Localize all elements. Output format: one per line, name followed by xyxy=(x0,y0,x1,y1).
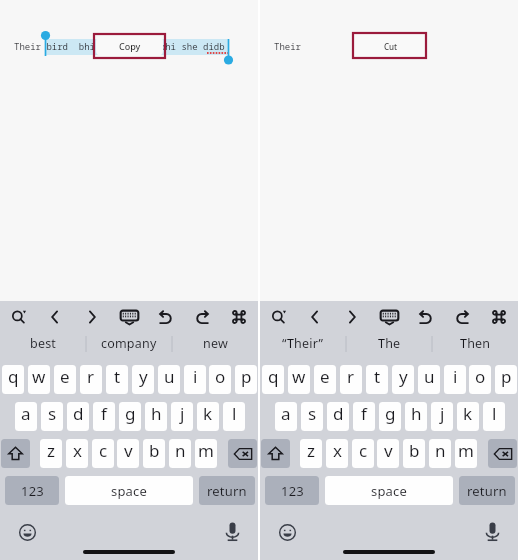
button[interactable]: x xyxy=(66,439,88,468)
button[interactable]: v xyxy=(377,439,399,468)
button[interactable]: h xyxy=(145,402,167,431)
staticText: Their xyxy=(274,40,302,52)
button[interactable]: s xyxy=(41,402,63,431)
button[interactable]: o xyxy=(469,365,491,394)
button[interactable]: r xyxy=(340,365,362,394)
button[interactable]: w xyxy=(288,365,310,394)
button[interactable]: c xyxy=(92,439,114,468)
button[interactable]: n xyxy=(169,439,191,468)
button[interactable]: x xyxy=(326,439,348,468)
button[interactable]: r xyxy=(80,365,102,394)
button[interactable]: company xyxy=(86,332,172,355)
button[interactable]: Search xyxy=(261,304,297,330)
button[interactable]: o xyxy=(209,365,231,394)
button[interactable]: z xyxy=(300,439,322,468)
button[interactable]: Then xyxy=(432,332,518,355)
button[interactable]: Dictation xyxy=(226,522,239,541)
button[interactable]: Emoji xyxy=(18,523,36,541)
button[interactable]: Redo xyxy=(184,304,220,330)
button[interactable]: u xyxy=(158,365,180,394)
button[interactable]: i xyxy=(184,365,206,394)
button[interactable]: q xyxy=(2,365,24,394)
button[interactable]: best xyxy=(0,332,86,355)
staticText: o xyxy=(215,365,226,388)
button[interactable]: return xyxy=(199,476,255,505)
staticText: n xyxy=(435,439,446,462)
button[interactable]: d xyxy=(327,402,349,431)
button[interactable]: Redo xyxy=(444,304,480,330)
button[interactable]: Copy xyxy=(96,36,163,56)
button[interactable]: m xyxy=(195,439,217,468)
button[interactable]: f xyxy=(93,402,115,431)
button[interactable]: Keyboard xyxy=(111,304,147,330)
button[interactable]: Backspace xyxy=(488,439,517,468)
button[interactable]: f xyxy=(353,402,375,431)
button[interactable]: 123 xyxy=(265,476,319,505)
button[interactable]: a xyxy=(15,402,37,431)
button[interactable]: b xyxy=(403,439,425,468)
staticText: h xyxy=(411,402,422,425)
button[interactable]: s xyxy=(301,402,323,431)
button[interactable]: n xyxy=(429,439,451,468)
staticText: x xyxy=(73,439,82,462)
button[interactable]: Next xyxy=(334,304,370,330)
button[interactable]: j xyxy=(431,402,453,431)
staticText: Then xyxy=(460,335,491,352)
button[interactable]: “Their” xyxy=(260,332,346,355)
button[interactable]: e xyxy=(54,365,76,394)
button[interactable]: space xyxy=(65,476,193,505)
button[interactable]: e xyxy=(314,365,336,394)
staticText: p xyxy=(241,365,252,388)
button[interactable]: Keyboard xyxy=(371,304,407,330)
button[interactable]: Backspace xyxy=(228,439,257,468)
button[interactable]: Shift xyxy=(1,439,30,468)
button[interactable]: l xyxy=(223,402,245,431)
button[interactable]: b xyxy=(143,439,165,468)
button[interactable]: p xyxy=(235,365,257,394)
button[interactable]: u xyxy=(418,365,440,394)
button[interactable]: Cut xyxy=(354,34,427,58)
button[interactable]: The xyxy=(346,332,432,355)
button[interactable]: d xyxy=(67,402,89,431)
button[interactable]: g xyxy=(119,402,141,431)
button[interactable]: y xyxy=(132,365,154,394)
button[interactable]: Command xyxy=(481,304,517,330)
button[interactable]: t xyxy=(366,365,388,394)
button[interactable]: Emoji xyxy=(278,523,296,541)
button[interactable]: 123 xyxy=(5,476,59,505)
staticText: return xyxy=(207,482,247,500)
button[interactable]: Shift xyxy=(261,439,290,468)
staticText: u xyxy=(164,365,175,388)
button[interactable]: y xyxy=(392,365,414,394)
button[interactable]: k xyxy=(457,402,479,431)
staticText: t xyxy=(374,365,381,388)
button[interactable]: Previous xyxy=(37,304,73,330)
button[interactable]: Undo xyxy=(407,304,443,330)
button[interactable]: t xyxy=(106,365,128,394)
button[interactable]: Undo xyxy=(147,304,183,330)
button[interactable]: i xyxy=(444,365,466,394)
button[interactable]: v xyxy=(117,439,139,468)
button[interactable]: Previous xyxy=(297,304,333,330)
button[interactable]: q xyxy=(262,365,284,394)
button[interactable]: Command xyxy=(221,304,257,330)
button[interactable]: space xyxy=(325,476,453,505)
button[interactable]: g xyxy=(379,402,401,431)
button[interactable]: return xyxy=(459,476,515,505)
button[interactable]: w xyxy=(28,365,50,394)
button[interactable]: Next xyxy=(74,304,110,330)
button[interactable]: z xyxy=(40,439,62,468)
button[interactable]: h xyxy=(405,402,427,431)
button[interactable]: a xyxy=(275,402,297,431)
staticText: m xyxy=(458,439,474,462)
button[interactable]: k xyxy=(197,402,219,431)
button[interactable]: Dictation xyxy=(486,522,499,541)
button[interactable]: Search xyxy=(1,304,37,330)
staticText: w xyxy=(32,365,46,388)
button[interactable]: m xyxy=(455,439,477,468)
button[interactable]: p xyxy=(495,365,517,394)
button[interactable]: new xyxy=(172,332,258,355)
button[interactable]: j xyxy=(171,402,193,431)
button[interactable]: l xyxy=(483,402,505,431)
button[interactable]: c xyxy=(352,439,374,468)
